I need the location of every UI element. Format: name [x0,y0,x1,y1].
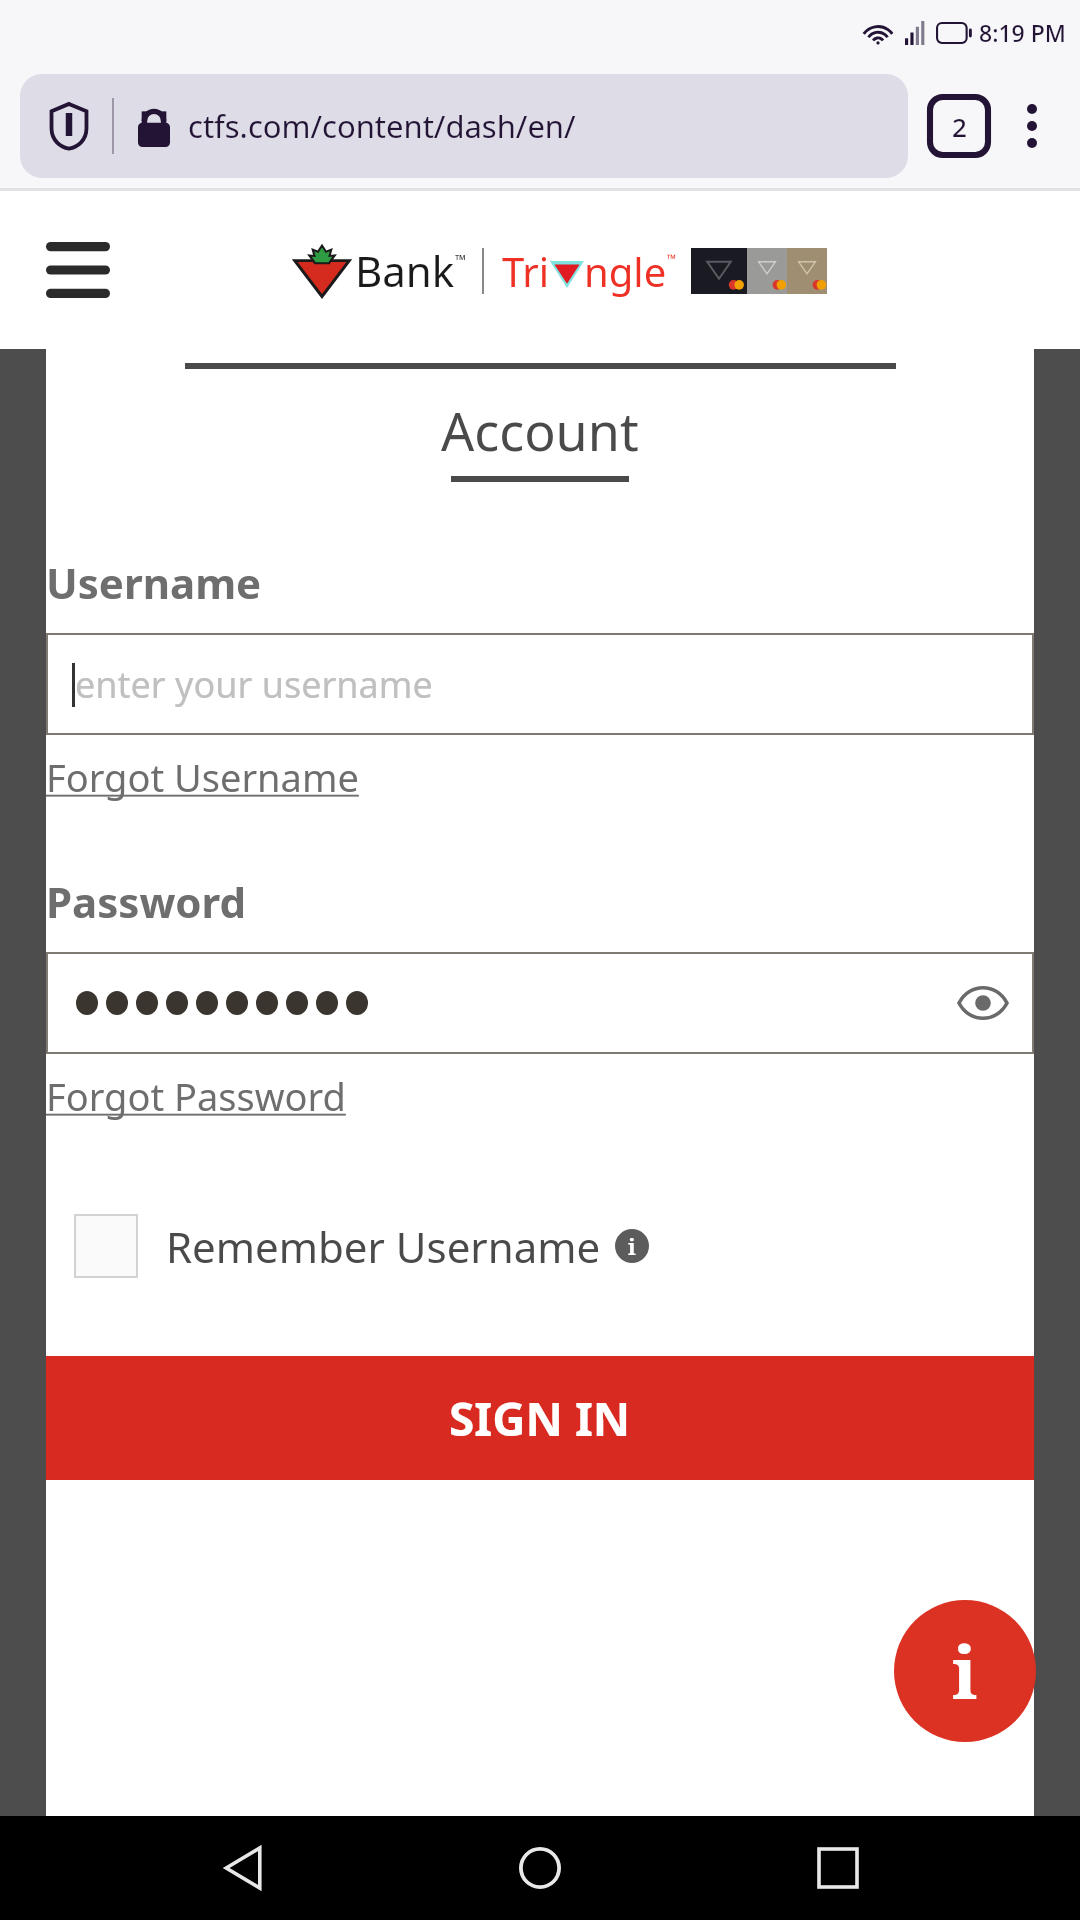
button[interactable]: Forgot Username [46,751,359,803]
staticText: 2 [952,109,967,144]
button[interactable]: Home [485,1816,595,1920]
button[interactable]: Site security [20,74,908,178]
staticText: Bank [355,242,455,299]
button[interactable]: More options [1004,98,1060,154]
button[interactable]: Remember Username [74,1214,649,1278]
staticText: ™ [667,250,677,266]
staticText: i [628,1231,636,1261]
staticText: ctfs.com/content/dash/en/ [188,105,576,147]
button[interactable]: SIGN IN [46,1356,1034,1480]
button[interactable]: Information [894,1600,1036,1742]
staticText: i [952,1622,978,1720]
button[interactable]: Show password [46,952,1034,1054]
button[interactable]: enter your username [46,633,1034,735]
button[interactable]: Back [188,1816,298,1920]
other: Information [615,1229,649,1263]
button[interactable]: Menu [46,242,110,298]
staticText: Username [46,554,262,611]
staticText: ngle [584,244,667,298]
staticText: Tri [502,244,550,298]
button[interactable]: Tabs: 2 [930,97,988,155]
staticText: Remember Username [166,1218,601,1275]
staticText: Forgot Password [46,1070,346,1122]
staticText: Password [46,873,247,930]
staticText: Forgot Username [46,751,359,803]
staticText: 8:19 PM [979,17,1066,48]
other: Site security [50,103,88,149]
button[interactable]: Recent apps [783,1816,893,1920]
staticText: enter your username [75,660,433,709]
button[interactable]: Show password [954,974,1012,1032]
staticText: ™ [455,250,466,269]
button[interactable]: Forgot Password [46,1070,346,1122]
staticText: SIGN IN [449,1387,631,1450]
staticText: Account [441,395,639,466]
